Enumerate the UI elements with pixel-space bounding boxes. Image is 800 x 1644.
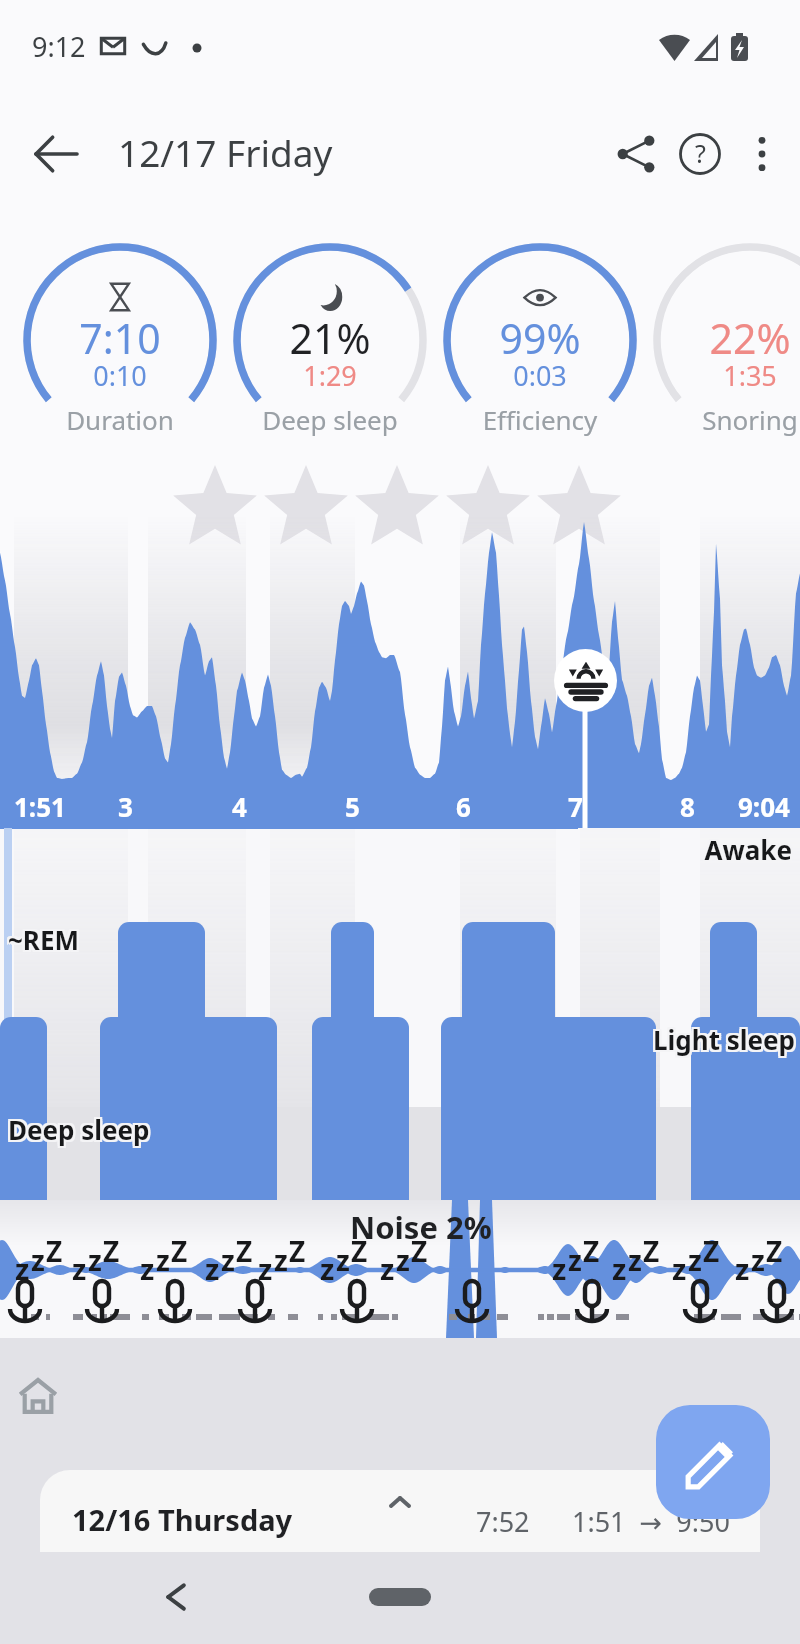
staticText: Z — [46, 1232, 63, 1270]
staticText: 1:35 — [640, 357, 800, 394]
staticText: Light sleep — [402, 1024, 797, 1059]
staticText: z — [205, 1249, 220, 1288]
staticText: Deep sleep — [10, 1112, 310, 1147]
staticText: Light sleep — [398, 1024, 793, 1059]
staticText: z — [88, 1241, 102, 1279]
button[interactable]: 12/16 Thursday — [40, 1470, 760, 1552]
staticText: z — [628, 1241, 642, 1279]
staticText: Duration — [0, 402, 250, 437]
button[interactable]: Help — [668, 122, 732, 186]
staticText: Deep sleep — [8, 1110, 308, 1145]
staticText: 6 — [456, 789, 471, 824]
staticText: Awake — [400, 832, 792, 867]
staticText: Deep sleep — [6, 1110, 306, 1145]
staticText: Z — [103, 1232, 120, 1270]
staticText: Light sleep — [402, 1020, 797, 1055]
staticText: Z — [583, 1232, 600, 1270]
staticText: 99% — [430, 310, 650, 366]
staticText: z — [15, 1249, 30, 1288]
staticText: z — [320, 1249, 335, 1288]
staticText: 7:10 — [10, 310, 230, 366]
staticText: Awake — [398, 834, 790, 869]
staticText: ~REM — [10, 920, 310, 955]
staticText: ~REM — [6, 920, 306, 955]
staticText: 3 — [118, 789, 133, 824]
staticText: 7:52 — [476, 1503, 530, 1540]
staticText: 5 — [345, 789, 360, 824]
staticText: Z — [703, 1232, 720, 1270]
staticText: Deep sleep — [10, 1114, 310, 1149]
staticText: ~REM — [8, 922, 308, 957]
staticText: Light sleep — [400, 1022, 795, 1057]
staticText: z — [72, 1249, 87, 1288]
staticText: z — [140, 1249, 155, 1288]
staticText: Awake — [398, 830, 790, 865]
staticText: Deep sleep — [200, 402, 460, 437]
staticText: Z — [236, 1232, 253, 1270]
staticText: ~REM — [6, 924, 306, 959]
staticText: ~REM — [8, 920, 308, 955]
staticText: Z — [411, 1232, 428, 1270]
staticText: z — [612, 1249, 627, 1288]
staticText: Z — [766, 1232, 783, 1270]
button[interactable]: Edit — [656, 1405, 770, 1519]
staticText: Light sleep — [400, 1024, 795, 1059]
staticText: 12/17 Friday — [118, 127, 333, 177]
staticText: z — [396, 1241, 410, 1279]
staticText: Awake — [400, 830, 792, 865]
staticText: z — [751, 1241, 765, 1279]
staticText: z — [258, 1249, 273, 1288]
button[interactable]: Back — [148, 1569, 204, 1625]
staticText: ~REM — [8, 924, 308, 959]
staticText: Light sleep — [398, 1020, 793, 1055]
staticText: Awake — [402, 834, 794, 869]
staticText: Deep sleep — [6, 1114, 306, 1149]
staticText: Light sleep — [402, 1022, 797, 1057]
staticText: z — [274, 1241, 288, 1279]
staticText: Snoring — [620, 402, 800, 437]
button[interactable]: Back — [24, 122, 88, 186]
staticText: ~REM — [10, 922, 310, 957]
staticText: 9:12 — [32, 28, 86, 65]
staticText: 12/16 Thursday — [72, 1500, 293, 1539]
button[interactable]: Sunrise marker — [554, 649, 617, 712]
button[interactable]: Share — [604, 122, 668, 186]
staticText: z — [31, 1241, 45, 1279]
staticText: Awake — [402, 832, 794, 867]
staticText: Awake — [402, 830, 794, 865]
staticText: Deep sleep — [10, 1110, 310, 1145]
staticText: z — [568, 1241, 582, 1279]
staticText: Z — [351, 1232, 368, 1270]
staticText: Light sleep — [400, 1020, 795, 1055]
staticText: Z — [643, 1232, 660, 1270]
staticText: Deep sleep — [8, 1112, 308, 1147]
staticText: 0:10 — [10, 357, 230, 394]
staticText: ? — [695, 136, 706, 170]
staticText: z — [221, 1241, 235, 1279]
staticText: 22% — [640, 310, 800, 366]
staticText: Awake — [400, 834, 792, 869]
staticText: Light sleep — [398, 1022, 793, 1057]
staticText: z — [380, 1249, 395, 1288]
staticText: 1:51 — [14, 789, 66, 824]
staticText: z — [672, 1249, 687, 1288]
button[interactable]: Home — [369, 1588, 431, 1606]
staticText: 21% — [220, 310, 440, 366]
staticText: Awake — [398, 832, 790, 867]
staticText: 0:03 — [430, 357, 650, 394]
staticText: Noise 2% — [350, 1206, 492, 1248]
staticText: z — [552, 1249, 567, 1288]
staticText: 1:29 — [220, 357, 440, 394]
staticText: Efficiency — [410, 402, 670, 437]
staticText: 9:04 — [738, 789, 790, 824]
button[interactable]: More options — [732, 124, 792, 184]
staticText: Z — [289, 1232, 306, 1270]
staticText: Deep sleep — [8, 1114, 308, 1149]
button[interactable]: Home — [8, 1366, 68, 1426]
staticText: Z — [171, 1232, 188, 1270]
staticText: ~REM — [6, 922, 306, 957]
staticText: 8 — [680, 789, 695, 824]
staticText: 7 — [568, 789, 583, 824]
staticText: z — [735, 1249, 750, 1288]
staticText: z — [688, 1241, 702, 1279]
